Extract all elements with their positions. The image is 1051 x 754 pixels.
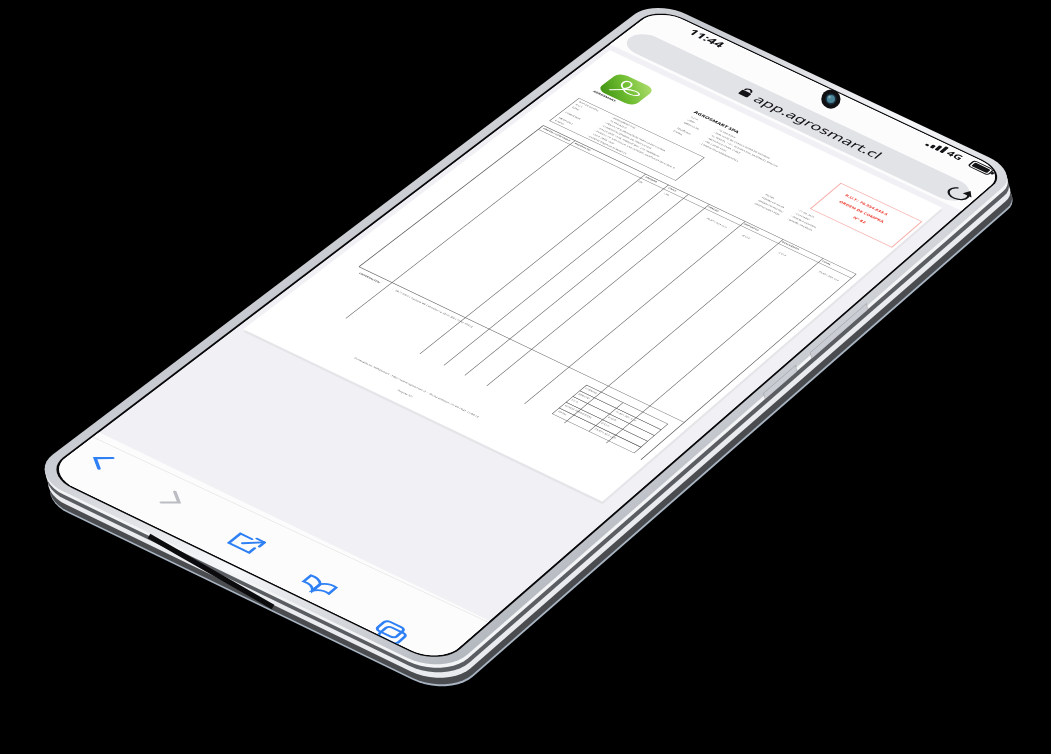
- button[interactable]: Phone mockup: browser showing an invoice…: [0, 0, 1051, 754]
